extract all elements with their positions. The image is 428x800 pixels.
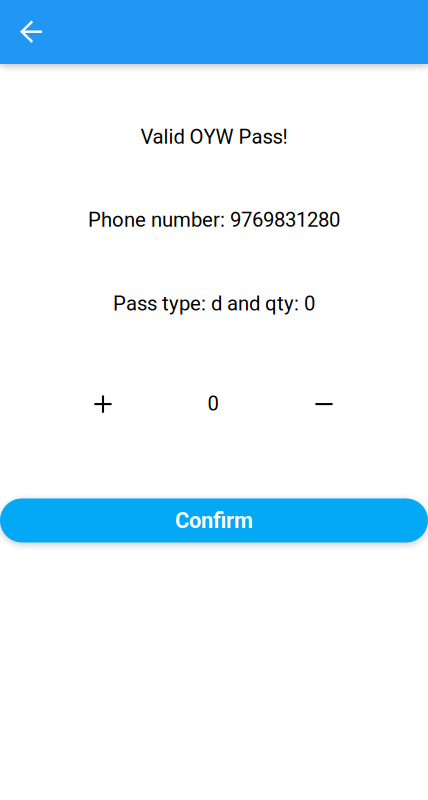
button[interactable]: Decrease quantity [274,386,373,420]
staticText: Pass type: d and qty: 0 [113,292,315,315]
staticText: Phone number: 9769831280 [88,208,340,232]
staticText: 0 [207,392,218,415]
button[interactable]: Back [11,0,53,64]
button[interactable]: Increase quantity [54,386,151,420]
staticText: Confirm [175,508,253,533]
staticText: Valid OYW Pass! [140,125,287,149]
button[interactable]: Confirm [0,498,428,542]
